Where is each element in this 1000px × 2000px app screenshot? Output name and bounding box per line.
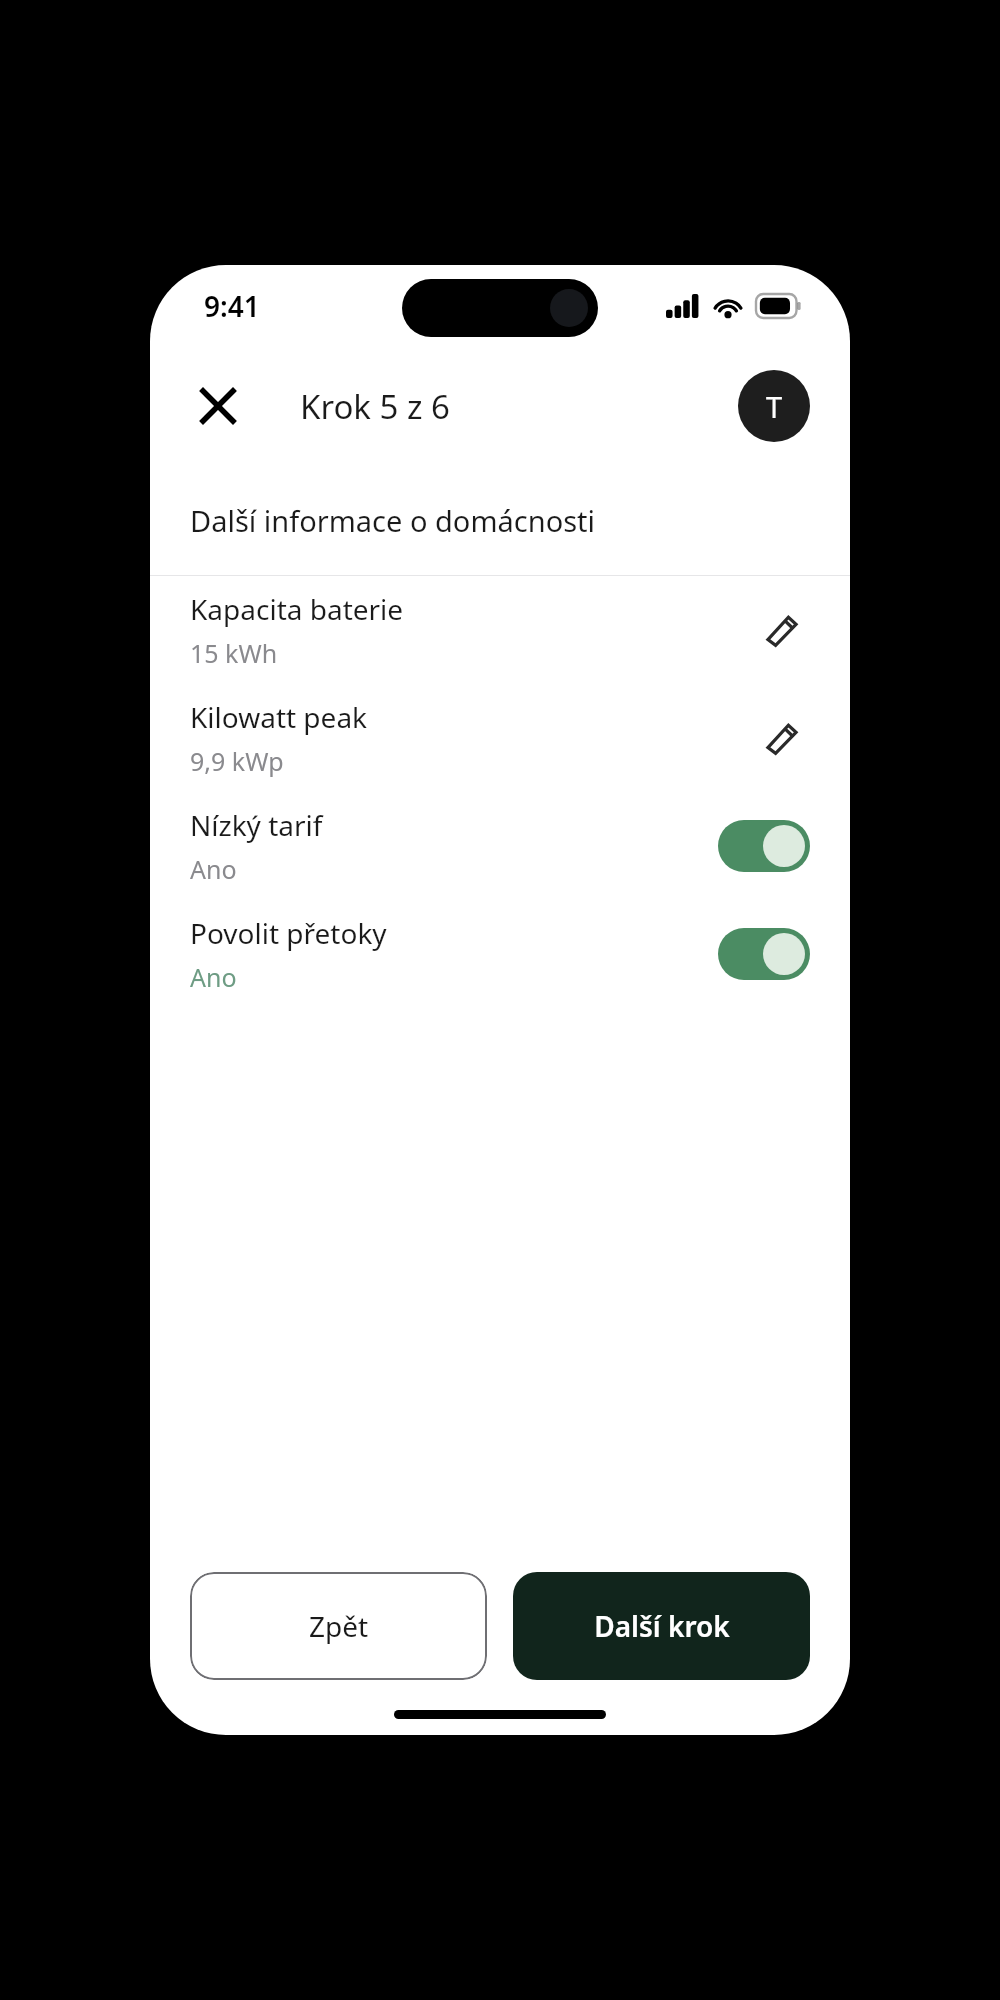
button[interactable]: Kapacita baterie [150, 576, 850, 684]
button[interactable]: Nízký tarif [718, 820, 810, 872]
staticText: 15 kWh [190, 636, 278, 670]
other: Upravit [754, 602, 810, 658]
button[interactable]: Další krok [513, 1572, 810, 1680]
button[interactable]: Profil [738, 370, 810, 442]
staticText: Další informace o domácnosti [190, 501, 596, 540]
staticText: Zpět [309, 1607, 369, 1645]
button[interactable]: Zpět [190, 1572, 487, 1680]
staticText: Kilowatt peak [190, 698, 368, 736]
staticText: Povolit přetoky [190, 914, 387, 952]
other: Upravit [754, 710, 810, 766]
button[interactable]: Kilowatt peak [150, 684, 850, 792]
staticText: Ano [190, 960, 237, 994]
staticText: 9,9 kWp [190, 744, 284, 778]
button[interactable]: Povolit přetoky [150, 900, 850, 1008]
staticText: Nízký tarif [190, 806, 323, 844]
staticText: Kapacita baterie [190, 590, 404, 628]
button[interactable]: Povolit přetoky [718, 928, 810, 980]
button[interactable]: Nízký tarif [150, 792, 850, 900]
staticText: T [766, 387, 783, 426]
staticText: Další krok [594, 1607, 730, 1645]
staticText: 9:41 [204, 287, 260, 325]
staticText: Ano [190, 852, 237, 886]
staticText: Krok 5 z 6 [300, 384, 450, 429]
button[interactable]: Zavřít [190, 378, 246, 434]
